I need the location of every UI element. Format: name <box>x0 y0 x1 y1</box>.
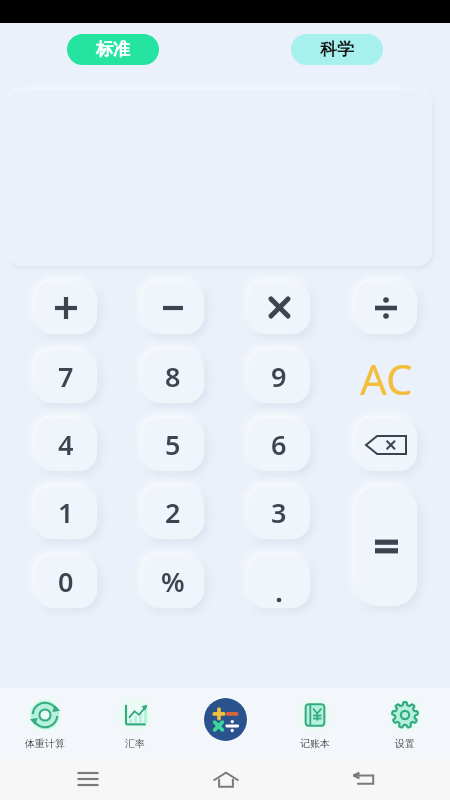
staticText: 6 <box>271 426 287 463</box>
button[interactable]: = <box>355 486 417 606</box>
staticText: 7 <box>58 358 74 395</box>
button[interactable]: ÷ <box>355 281 417 334</box>
button[interactable]: 3 <box>248 486 310 539</box>
button[interactable]: 设置 <box>360 697 450 758</box>
button[interactable]: Home <box>200 764 251 794</box>
staticText: 2 <box>165 494 181 531</box>
button[interactable]: − <box>142 281 204 334</box>
staticText: 标准 <box>96 39 130 60</box>
button[interactable]: 1 <box>35 486 97 539</box>
staticText: % <box>161 563 185 600</box>
button[interactable]: 0 <box>35 555 97 608</box>
button[interactable]: 8 <box>142 350 204 403</box>
button[interactable]: 2 <box>142 486 204 539</box>
button[interactable]: . <box>248 555 310 608</box>
button[interactable]: 7 <box>35 350 97 403</box>
staticText: 3 <box>271 494 287 531</box>
staticText: 设置 <box>395 737 415 750</box>
button[interactable]: 9 <box>248 350 310 403</box>
button[interactable]: 标准 <box>67 34 159 65</box>
button[interactable]: Recents <box>62 764 113 794</box>
button[interactable]: 记账本 <box>270 697 360 758</box>
button[interactable]: 体重计算 <box>0 697 90 758</box>
staticText: 体重计算 <box>25 737 65 750</box>
staticText: 1 <box>58 494 74 531</box>
staticText: 科学 <box>320 39 354 60</box>
button[interactable]: 4 <box>35 418 97 471</box>
button[interactable]: + <box>35 281 97 334</box>
staticText: 8 <box>165 358 181 395</box>
button[interactable]: AC <box>355 350 417 403</box>
button[interactable]: 科学 <box>291 34 383 65</box>
staticText: AC <box>360 350 413 403</box>
staticText: 5 <box>165 426 181 463</box>
button[interactable]: Back <box>339 764 390 794</box>
button[interactable]: 汇率 <box>90 697 180 758</box>
staticText: 0 <box>58 563 74 600</box>
button[interactable]: backspace <box>355 418 417 471</box>
staticText: 记账本 <box>300 737 330 750</box>
staticText: 汇率 <box>125 737 145 750</box>
button[interactable]: 6 <box>248 418 310 471</box>
button[interactable]: × <box>248 281 310 334</box>
button[interactable]: 5 <box>142 418 204 471</box>
button[interactable]: Calculator <box>180 697 270 758</box>
staticText: 9 <box>271 358 287 395</box>
staticText: 4 <box>58 426 74 463</box>
button[interactable]: % <box>142 555 204 608</box>
